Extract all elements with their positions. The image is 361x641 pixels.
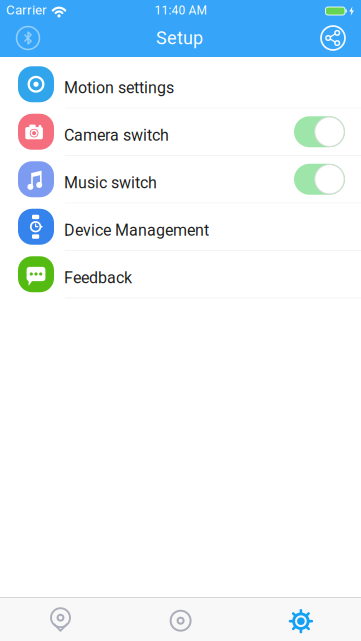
button[interactable]: Feedback (0, 251, 361, 298)
staticText: Feedback (64, 268, 132, 287)
staticText: Carrier (6, 2, 47, 18)
button[interactable]: Motion (120, 598, 241, 641)
button[interactable]: Bluetooth (13, 23, 43, 53)
button[interactable]: Share (317, 22, 349, 54)
button[interactable]: Music switch (294, 164, 345, 195)
staticText: Device Management (64, 221, 209, 240)
button[interactable]: Setup (241, 598, 361, 641)
staticText: Music switch (64, 173, 157, 192)
button[interactable]: Device Management (0, 203, 361, 251)
staticText: 11:40 AM (154, 3, 206, 18)
button[interactable]: Location (0, 598, 120, 641)
button[interactable]: Motion settings (0, 61, 361, 108)
staticText: Motion settings (64, 78, 174, 97)
staticText: Camera switch (64, 126, 169, 145)
staticText: Setup (156, 27, 203, 49)
button[interactable]: Camera switch (294, 116, 345, 147)
